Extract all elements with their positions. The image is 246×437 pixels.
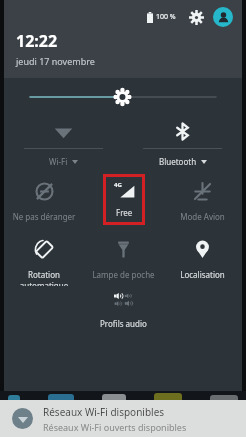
staticText: Lampe de poche (86, 269, 161, 280)
button[interactable]: Localisation (163, 232, 242, 280)
button[interactable]: User profile (213, 7, 233, 27)
button[interactable]: Brightness (4, 78, 242, 116)
button[interactable]: Bluetooth (123, 116, 242, 167)
button[interactable]: Rotation automatique (4, 232, 84, 286)
staticText: Free (116, 207, 133, 218)
staticText: Wi-Fi (49, 156, 68, 167)
staticText: 4G (114, 181, 122, 189)
button[interactable]: Wi-Fi (4, 116, 123, 167)
staticText: jeudi 17 novembre (16, 55, 95, 67)
button[interactable]: Ne pas déranger (4, 174, 84, 222)
staticText: Mode Avion (165, 211, 240, 222)
staticText: Réseaux Wi-Fi ouverts disponibles (43, 421, 187, 433)
staticText: 100 % (156, 12, 176, 22)
button[interactable]: 4G (103, 174, 145, 225)
button[interactable]: Settings (186, 7, 206, 27)
button[interactable]: Mode Avion (163, 174, 242, 222)
staticText: Profils audio (100, 318, 147, 329)
staticText: Rotation automatique (6, 269, 82, 286)
button[interactable]: Lampe de poche (84, 232, 163, 280)
button[interactable]: Profils audio (4, 286, 242, 329)
staticText: 12:22 (16, 30, 58, 52)
staticText: Ne pas déranger (6, 211, 82, 222)
staticText: Réseaux Wi-Fi disponibles (43, 405, 165, 419)
button[interactable]: Réseaux Wi-Fi disponibles (0, 400, 246, 437)
staticText: Localisation (165, 269, 240, 280)
staticText: Bluetooth (159, 156, 197, 167)
